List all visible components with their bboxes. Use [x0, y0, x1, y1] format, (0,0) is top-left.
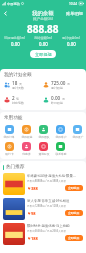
staticText: 累计收益 — [51, 86, 63, 90]
staticText: 年终豪礼回馈·超值大礼包·限量… — [27, 173, 76, 178]
staticText: 可提现余额(元) — [4, 36, 26, 40]
button[interactable]: 立即购买 — [68, 236, 80, 240]
staticText: 笔 — [16, 97, 19, 101]
staticText: 昨日收益 — [51, 101, 63, 105]
button[interactable]: 我的订单 — [0, 125, 18, 139]
staticText: ￥188 — [27, 236, 38, 241]
staticText: 我的客户 — [55, 135, 67, 139]
button[interactable]: 0.00 — [43, 95, 82, 105]
button[interactable]: 累计收益(元) — [57, 36, 85, 47]
staticText: 联系客服 — [55, 152, 67, 156]
button[interactable]: 年终豪礼回馈·超值大礼包·限量… — [3, 173, 83, 195]
staticText: 累计天数 — [12, 86, 24, 90]
staticText: 元 — [67, 82, 70, 86]
staticText: 优惠券 — [22, 152, 31, 156]
staticText: 银行卡 — [5, 152, 14, 156]
staticText: 已售出12888份 / 已有1288人评价 — [27, 204, 67, 208]
staticText: 元 — [62, 97, 65, 101]
button[interactable]: 联系客服 — [52, 142, 69, 156]
staticText: 天 — [19, 82, 22, 86]
staticText: 2 — [12, 95, 15, 101]
staticText: 0.00 — [39, 41, 48, 47]
button[interactable]: 我的收益 — [18, 125, 35, 139]
staticText: 账户余额(元) — [33, 16, 54, 21]
button[interactable]: 2 — [4, 95, 43, 105]
staticText: 累计收益(元) — [62, 36, 80, 40]
button[interactable]: 新人专属·首单立减·好礼相送 — [3, 198, 83, 220]
button[interactable]: 立即购买 — [68, 211, 80, 215]
button[interactable]: 725.00 — [43, 80, 82, 90]
button[interactable]: 账单明细 — [66, 11, 83, 16]
button[interactable]: 银行卡 — [0, 142, 18, 156]
staticText: 中国移动 — [7, 2, 20, 6]
staticText: 已售出66666份 / 已有2666人评价 — [27, 229, 67, 233]
button[interactable]: 立即购买 — [68, 186, 80, 190]
staticText: 我的计划金额 — [4, 72, 32, 78]
staticText: 账单明细 — [66, 11, 83, 16]
staticText: 0.00 — [51, 95, 61, 101]
staticText: 邀请好友 — [38, 152, 50, 156]
button[interactable]: 18 — [4, 80, 43, 90]
staticText: ￥388 — [27, 186, 38, 191]
staticText: 持有笔数 — [12, 101, 24, 105]
button[interactable]: 我的团队 — [35, 125, 52, 139]
staticText: 我的余额 — [32, 10, 54, 17]
staticText: 常用功能 — [4, 115, 23, 121]
button[interactable]: 立即提现 — [30, 50, 56, 58]
button[interactable]: 限时秒杀·超值优惠·马上抢购 — [3, 223, 83, 245]
staticText: 888.88 — [27, 22, 59, 36]
staticText: 冻结金额(元) — [34, 36, 52, 40]
button[interactable]: 我的推广 — [69, 125, 86, 139]
button[interactable]: 优惠券 — [18, 142, 35, 156]
staticText: 立即购买 — [68, 186, 80, 190]
button[interactable]: 邀请好友 — [35, 142, 52, 156]
staticText: 立即购买 — [68, 236, 80, 240]
staticText: 新人专属·首单立减·好礼相送 — [27, 198, 70, 203]
staticText: 我的团队 — [38, 135, 50, 139]
staticText: 725.00 — [51, 80, 66, 86]
button[interactable]: Back — [0, 8, 10, 18]
staticText: 限时秒杀·超值优惠·马上抢购 — [27, 223, 70, 228]
staticText: 立即购买 — [68, 211, 80, 215]
button[interactable]: 冻结金额(元) — [29, 36, 57, 47]
staticText: 我的订单 — [3, 135, 15, 139]
staticText: 已售出88888份 / 已有3888人评价 — [27, 179, 67, 183]
staticText: 0.00 — [67, 41, 76, 47]
staticText: 10:24 — [69, 2, 78, 6]
staticText: 18 — [12, 80, 18, 86]
staticText: 立即提现 — [35, 52, 52, 57]
button[interactable]: 我的客户 — [52, 125, 69, 139]
staticText: 热门推荐 — [6, 164, 25, 170]
staticText: ￥98 — [27, 211, 36, 216]
button[interactable]: 可提现余额(元) — [1, 36, 29, 47]
staticText: 我的推广 — [72, 135, 84, 139]
staticText: 我的收益 — [21, 135, 33, 139]
staticText: 0.00 — [11, 41, 20, 47]
